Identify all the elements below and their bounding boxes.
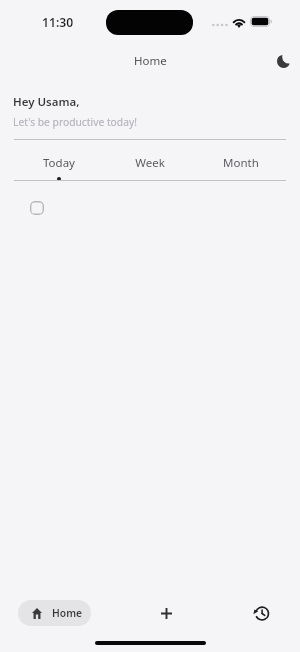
button[interactable]: Home — [18, 600, 91, 626]
staticText: Home — [134, 53, 167, 69]
button[interactable]: Week — [104, 155, 195, 183]
button[interactable]: Month — [195, 155, 286, 183]
staticText: Hey Usama, — [13, 94, 80, 110]
button[interactable]: Add task — [146, 600, 187, 626]
staticText: Home — [52, 606, 83, 620]
staticText: Let's be productive today! — [13, 115, 137, 129]
button[interactable]: Task checkbox — [30, 201, 44, 215]
button[interactable]: Toggle dark mode — [271, 49, 295, 73]
button[interactable]: Today — [14, 155, 104, 183]
staticText: Month — [223, 155, 259, 171]
staticText: 11:30 — [42, 14, 74, 31]
button[interactable]: History — [241, 600, 282, 626]
staticText: Week — [135, 155, 165, 171]
staticText: Today — [43, 155, 75, 171]
